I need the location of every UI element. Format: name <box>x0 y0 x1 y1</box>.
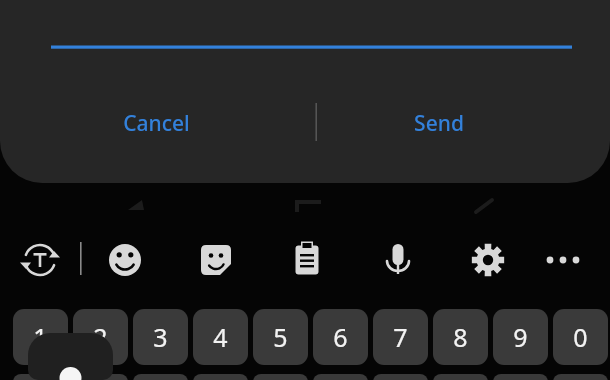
button[interactable]: Stickers <box>192 236 240 284</box>
staticText: 5 <box>273 320 288 354</box>
button[interactable]: 4 <box>193 309 248 365</box>
button[interactable]: Emoji <box>101 236 149 284</box>
staticText: 3 <box>153 320 168 354</box>
button[interactable]: More options <box>539 236 587 284</box>
button[interactable]: 5 <box>253 309 308 365</box>
button[interactable]: Settings <box>464 236 512 284</box>
button[interactable]: Clipboard <box>283 236 331 284</box>
button[interactable]: 3 <box>133 309 188 365</box>
staticText: Send <box>414 109 464 138</box>
staticText: Cancel <box>123 109 190 138</box>
staticText: 7 <box>393 320 408 354</box>
button[interactable]: 6 <box>313 309 368 365</box>
button[interactable]: 9 <box>493 309 548 365</box>
button[interactable]: 0 <box>553 309 608 365</box>
button[interactable]: Voice input <box>374 236 422 284</box>
button[interactable]: Cancel <box>105 99 208 148</box>
button[interactable]: 2 <box>73 309 128 365</box>
button[interactable]: 1 <box>13 309 68 365</box>
staticText: 2 <box>93 320 108 354</box>
staticText: 4 <box>213 320 228 354</box>
staticText: 1 <box>33 320 48 354</box>
staticText: 8 <box>453 320 468 354</box>
button[interactable]: 7 <box>373 309 428 365</box>
button[interactable]: Send <box>396 99 482 148</box>
button[interactable]: 8 <box>433 309 488 365</box>
button[interactable]: Switch input language <box>16 236 64 284</box>
staticText: 9 <box>513 320 528 354</box>
staticText: 0 <box>573 320 588 354</box>
staticText: 6 <box>333 320 348 354</box>
